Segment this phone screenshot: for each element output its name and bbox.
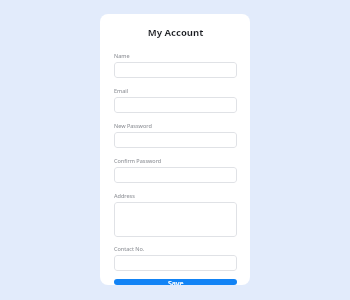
button[interactable]: Save [114, 279, 237, 285]
button[interactable] [114, 202, 237, 237]
staticText: Email [114, 87, 129, 94]
button[interactable] [114, 62, 237, 78]
button[interactable] [114, 97, 237, 113]
staticText: Confirm Password [114, 157, 162, 164]
button[interactable] [114, 255, 237, 271]
button[interactable] [114, 132, 237, 148]
staticText: Save [168, 279, 184, 285]
staticText: Contact No. [114, 245, 145, 252]
staticText: New Password [114, 122, 152, 129]
staticText: Address [114, 192, 135, 199]
staticText: My Account [114, 26, 237, 39]
staticText: Name [114, 52, 130, 59]
button[interactable] [114, 167, 237, 183]
